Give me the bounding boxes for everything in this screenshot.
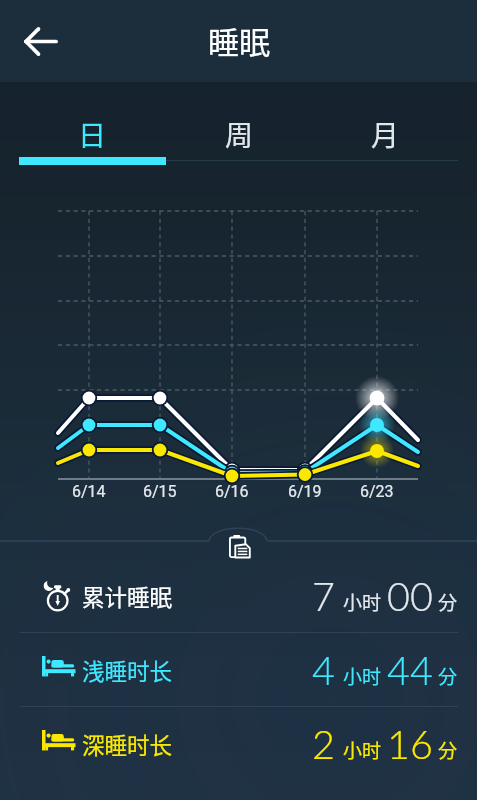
- staticText: 6/16: [215, 482, 249, 501]
- staticText: 累计睡眠: [82, 580, 173, 613]
- staticText: 00: [387, 572, 433, 619]
- staticText: 分: [438, 588, 458, 616]
- button[interactable]: Copy report: [226, 533, 252, 559]
- staticText: 周: [225, 114, 254, 155]
- staticText: 分: [438, 662, 458, 690]
- staticText: 深睡时长: [82, 728, 173, 761]
- button[interactable]: Back: [12, 12, 70, 70]
- button[interactable]: 深睡时长: [0, 707, 477, 781]
- button[interactable]: 周: [166, 82, 312, 158]
- staticText: 小时: [343, 588, 382, 616]
- staticText: 4: [312, 646, 335, 693]
- staticText: 浅睡时长: [82, 654, 173, 687]
- button[interactable]: 日: [19, 82, 166, 165]
- button[interactable]: 累计睡眠: [0, 559, 477, 633]
- staticText: 小时: [343, 662, 382, 690]
- staticText: 16: [387, 720, 433, 767]
- staticText: 6/23: [360, 482, 394, 501]
- staticText: 睡眠: [208, 18, 270, 63]
- staticText: 6/15: [143, 482, 177, 501]
- staticText: 月: [371, 114, 400, 155]
- staticText: 44: [387, 646, 433, 693]
- staticText: 2: [312, 720, 335, 767]
- button[interactable]: 浅睡时长: [0, 633, 477, 707]
- button[interactable]: 月: [312, 82, 458, 158]
- staticText: 日: [78, 114, 107, 155]
- staticText: 7: [312, 572, 335, 619]
- staticText: 6/19: [288, 482, 322, 501]
- staticText: 分: [438, 736, 458, 764]
- staticText: 小时: [343, 736, 382, 764]
- staticText: 6/14: [72, 482, 106, 501]
